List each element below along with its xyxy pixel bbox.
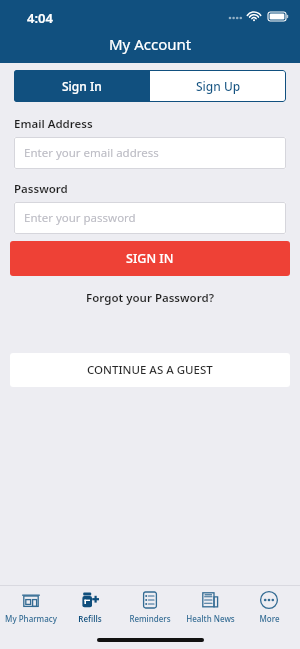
staticText: SIGN IN [126, 250, 174, 267]
button[interactable]: Enter your email address [14, 137, 286, 169]
staticText: Email Address [14, 116, 93, 132]
staticText: Sign In [62, 78, 102, 94]
staticText: Password [14, 181, 68, 197]
staticText: Refills [78, 613, 102, 624]
staticText: My Pharmacy [5, 613, 57, 624]
staticText: Enter your password [24, 210, 136, 226]
staticText: Reminders [129, 613, 171, 624]
button[interactable]: My Pharmacy [2, 590, 60, 624]
button[interactable]: Refills [61, 590, 119, 624]
staticText: Forgot your Password? [86, 290, 214, 306]
staticText: Sign Up [196, 78, 241, 94]
staticText: 4:04 [27, 9, 53, 27]
staticText: My Account [109, 34, 192, 54]
button[interactable]: Enter your password [14, 202, 286, 234]
staticText: CONTINUE AS A GUEST [87, 362, 213, 378]
button[interactable]: Forgot your Password? [0, 290, 300, 306]
button[interactable]: Sign Up [150, 70, 286, 102]
staticText: Health News [186, 613, 235, 624]
button[interactable]: CONTINUE AS A GUEST [10, 353, 290, 387]
button[interactable]: SIGN IN [10, 241, 290, 276]
staticText: Enter your email address [24, 145, 159, 161]
button[interactable]: Sign In [14, 70, 150, 102]
button[interactable]: Health News [181, 590, 239, 624]
button[interactable]: More [240, 590, 298, 624]
staticText: More [259, 613, 280, 624]
button[interactable]: Reminders [121, 590, 179, 624]
